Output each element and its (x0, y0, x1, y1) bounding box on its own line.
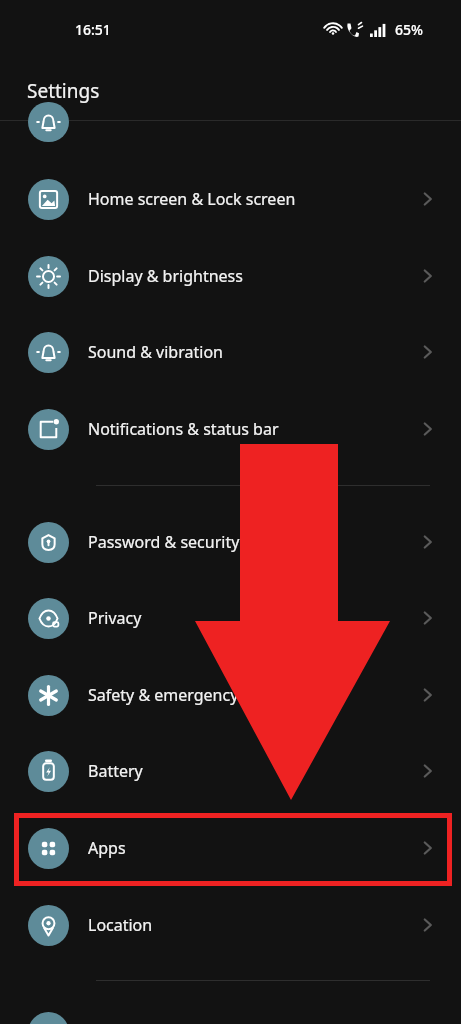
button[interactable] (0, 121, 461, 161)
button[interactable]: Apps (0, 810, 461, 886)
staticText: 16:51 (75, 20, 111, 39)
staticText: Notifications & status bar (88, 418, 279, 440)
staticText: Privacy (88, 607, 142, 629)
button[interactable]: Privacy (0, 580, 461, 656)
staticText: Settings (27, 78, 100, 104)
button[interactable]: Home screen & Lock screen (0, 161, 461, 237)
staticText: Battery (88, 760, 143, 782)
button[interactable]: Battery (0, 733, 461, 809)
button[interactable]: Safety & emergency (0, 657, 461, 733)
button[interactable]: Password & security (0, 504, 461, 580)
staticText: Sound & vibration (88, 341, 223, 363)
staticText: Safety & emergency (88, 684, 239, 706)
staticText: Display & brightness (88, 265, 243, 287)
staticText: Password & security (88, 531, 240, 553)
button[interactable]: Display & brightness (0, 238, 461, 314)
button[interactable]: Location (0, 887, 461, 963)
staticText: Apps (88, 837, 126, 859)
button[interactable]: Notifications & status bar (0, 391, 461, 467)
staticText: 65% (395, 20, 423, 39)
staticText: Location (88, 914, 153, 936)
staticText: Home screen & Lock screen (88, 188, 296, 210)
button[interactable]: Sound & vibration (0, 314, 461, 390)
